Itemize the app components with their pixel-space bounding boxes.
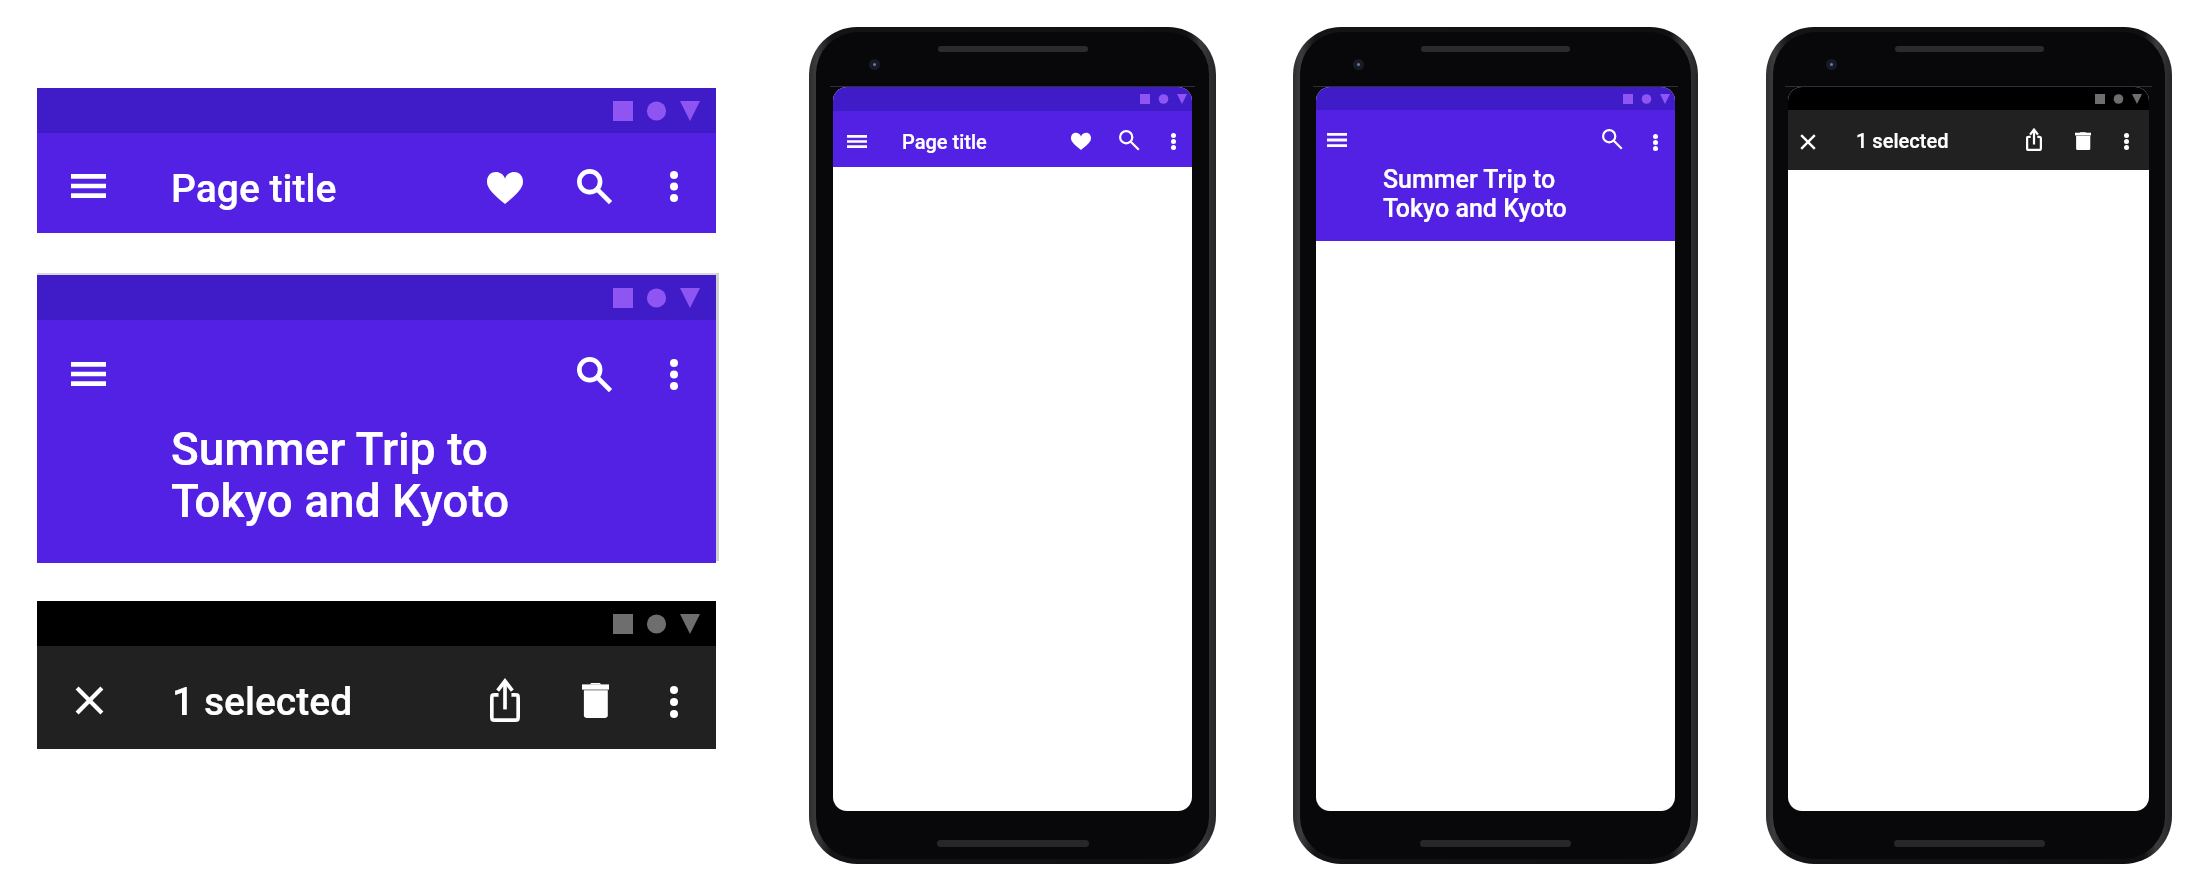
button[interactable]: Search — [568, 160, 620, 212]
button[interactable]: Close — [1792, 126, 1824, 158]
button[interactable]: More options — [648, 160, 700, 212]
button[interactable]: Favorite — [479, 162, 531, 214]
button[interactable]: Search — [1113, 124, 1145, 156]
staticText: 1 selected — [1856, 129, 1949, 152]
button[interactable]: Share — [479, 675, 531, 727]
staticText: Page title — [902, 130, 987, 153]
button[interactable]: More options — [2110, 125, 2142, 157]
button[interactable]: Close — [63, 674, 115, 726]
button[interactable]: Menu — [841, 125, 873, 157]
button[interactable]: Menu — [62, 160, 114, 212]
button[interactable]: Search — [568, 348, 620, 400]
button[interactable]: Share — [2018, 124, 2050, 156]
button[interactable]: More options — [1157, 125, 1189, 157]
button[interactable]: More options — [1639, 126, 1671, 158]
button[interactable]: More options — [648, 676, 700, 728]
button[interactable]: Search — [1596, 123, 1628, 155]
staticText: Summer Trip to Tokyo and Kyoto — [1383, 165, 1567, 223]
button[interactable]: Menu — [1321, 124, 1353, 156]
staticText: Summer Trip to Tokyo and Kyoto — [171, 422, 510, 528]
button[interactable]: Delete — [569, 674, 621, 726]
button[interactable]: Menu — [62, 348, 114, 400]
button[interactable]: Delete — [2067, 125, 2099, 157]
staticText: 1 selected — [172, 679, 353, 725]
staticText: Page title — [171, 166, 337, 212]
button[interactable]: More options — [648, 348, 700, 400]
button[interactable]: Favorite — [1065, 125, 1097, 157]
